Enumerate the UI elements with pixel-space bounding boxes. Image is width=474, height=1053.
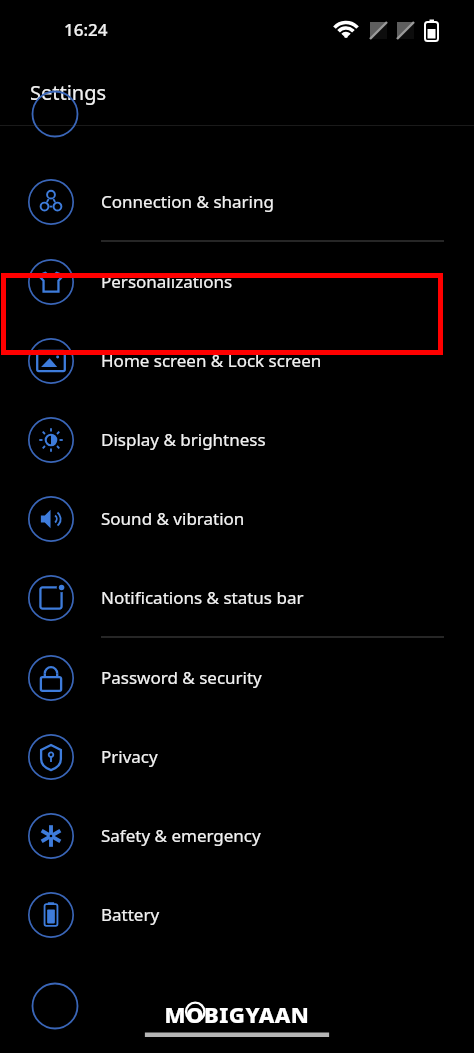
button[interactable]: Sound & vibration bbox=[0, 479, 474, 558]
button[interactable]: Connection & sharing bbox=[0, 162, 474, 241]
staticText: Display & brightness bbox=[101, 428, 266, 451]
staticText: Safety & emergency bbox=[101, 824, 261, 847]
button[interactable]: Safety & emergency bbox=[0, 796, 474, 875]
button[interactable]: Notifications & status bar bbox=[0, 558, 474, 637]
button[interactable]: Display & brightness bbox=[0, 400, 474, 479]
staticText: MOBIGYAAN bbox=[139, 999, 335, 1029]
button[interactable]: Battery bbox=[0, 875, 474, 954]
staticText: Settings bbox=[30, 79, 107, 106]
staticText: Password & security bbox=[101, 666, 262, 689]
staticText: Battery bbox=[101, 903, 160, 926]
staticText: Notifications & status bar bbox=[101, 586, 304, 609]
staticText: Personalizations bbox=[101, 270, 233, 293]
button[interactable]: Personalizations bbox=[0, 242, 474, 321]
staticText: Privacy bbox=[101, 745, 158, 768]
button[interactable]: Home screen & Lock screen bbox=[0, 321, 474, 400]
button[interactable]: Password & security bbox=[0, 638, 474, 717]
button[interactable]: Privacy bbox=[0, 717, 474, 796]
staticText: Connection & sharing bbox=[101, 190, 274, 213]
staticText: Sound & vibration bbox=[101, 507, 245, 530]
staticText: Home screen & Lock screen bbox=[101, 349, 322, 372]
staticText: 16:24 bbox=[64, 18, 108, 41]
